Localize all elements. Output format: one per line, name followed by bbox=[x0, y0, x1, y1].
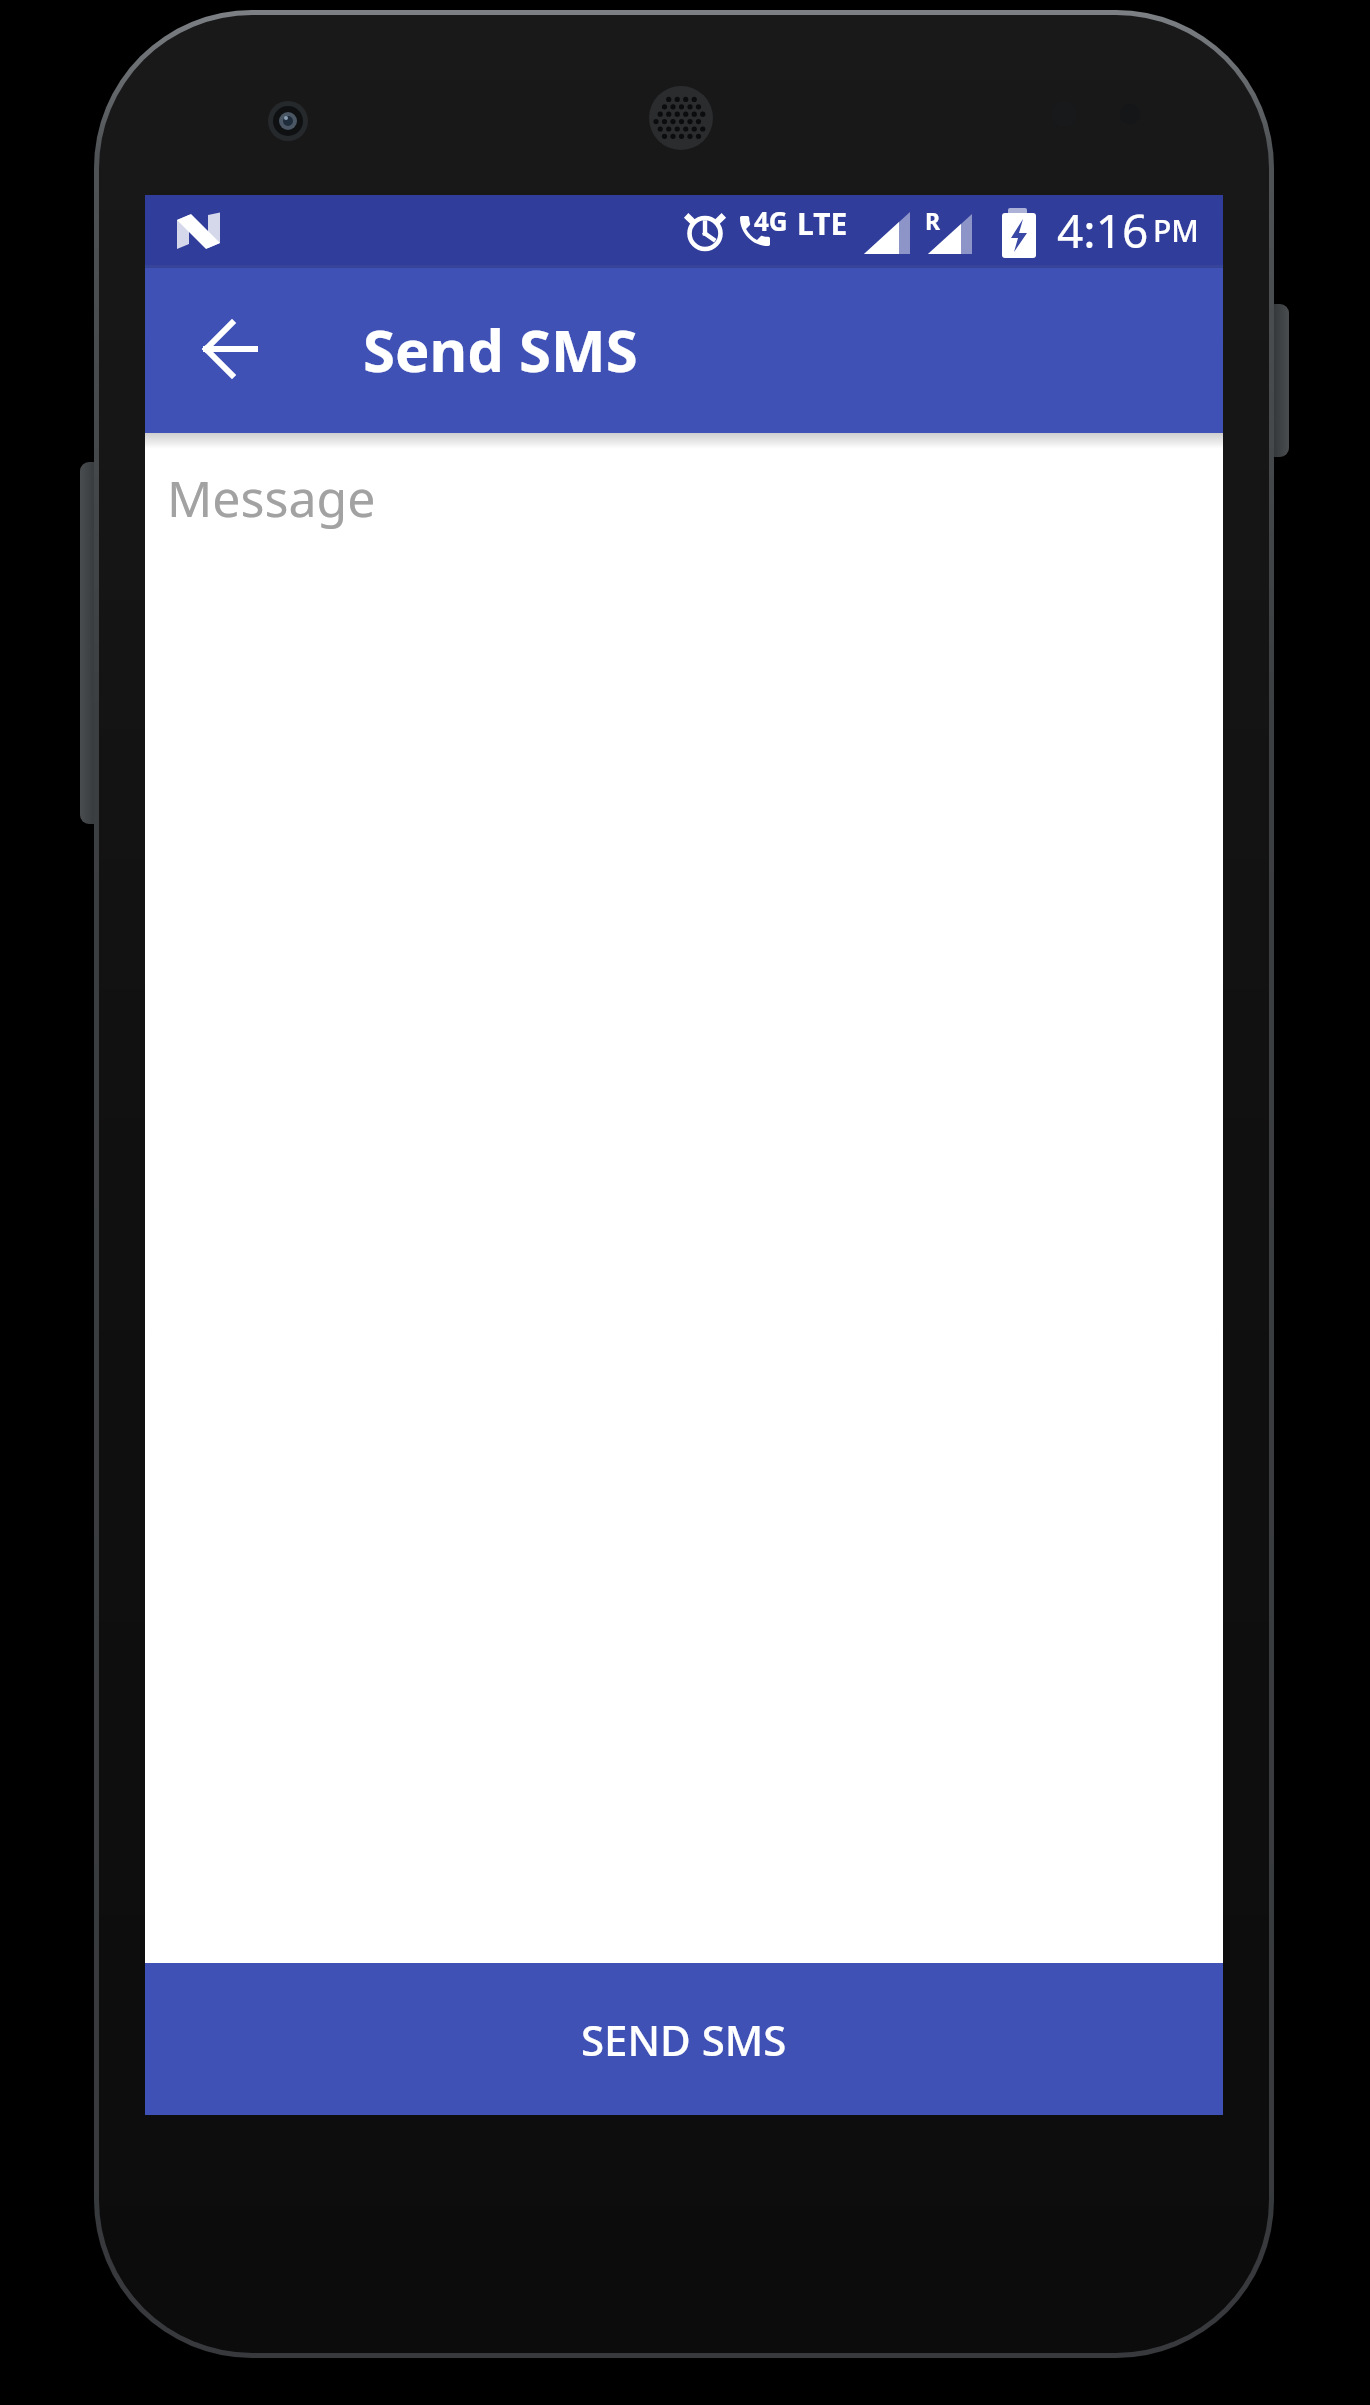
button[interactable]: SEND SMS bbox=[145, 1963, 1223, 2115]
staticText: LTE bbox=[797, 203, 848, 243]
staticText: Send SMS bbox=[363, 310, 638, 389]
button[interactable]: Message bbox=[167, 443, 1197, 553]
staticText: R bbox=[925, 205, 941, 235]
staticText: Message bbox=[167, 464, 376, 532]
staticText: 4G bbox=[754, 203, 788, 237]
staticText: 4:16 bbox=[1057, 199, 1149, 262]
button[interactable] bbox=[180, 299, 280, 399]
staticText: PM bbox=[1153, 210, 1199, 251]
staticText: SEND SMS bbox=[581, 2011, 787, 2068]
